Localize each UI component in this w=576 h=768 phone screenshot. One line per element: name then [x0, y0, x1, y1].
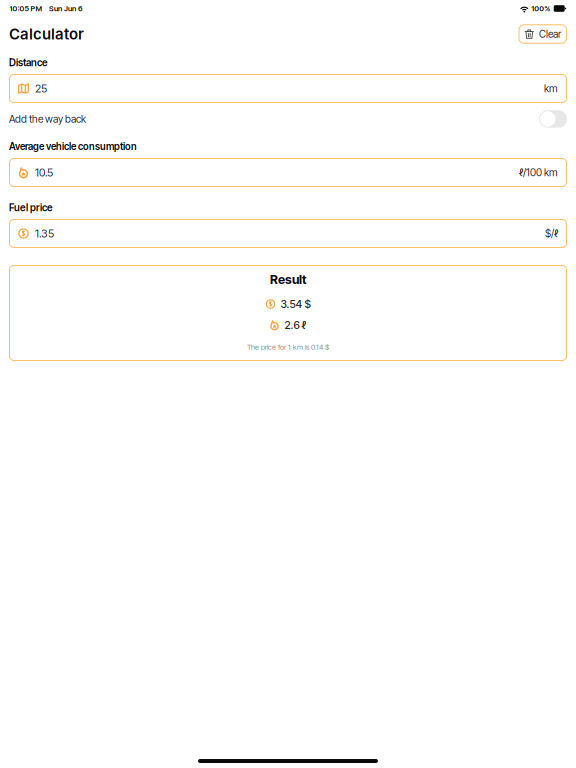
- staticText: 1.35: [35, 227, 54, 240]
- staticText: Fuel price: [9, 201, 53, 214]
- button[interactable]: 25: [9, 74, 567, 103]
- button[interactable]: 1.35: [9, 219, 567, 248]
- staticText: ℓ/100 km: [519, 166, 558, 179]
- staticText: Result: [270, 272, 306, 287]
- staticText: 10:05 PM: [9, 4, 42, 13]
- staticText: 10.5: [35, 166, 53, 179]
- button[interactable]: 10.5: [9, 158, 567, 187]
- staticText: Calculator: [9, 25, 84, 43]
- staticText: 100%: [531, 4, 550, 13]
- button[interactable]: Add the way back: [9, 110, 567, 128]
- staticText: Average vehicle consumption: [9, 141, 137, 152]
- staticText: Distance: [9, 56, 48, 69]
- staticText: $/ℓ: [545, 227, 558, 240]
- button[interactable]: Clear: [518, 24, 567, 44]
- staticText: Clear: [539, 28, 561, 40]
- staticText: Add the way back: [9, 113, 86, 125]
- staticText: 3.54 $: [280, 297, 310, 311]
- staticText: 2.6 ℓ: [284, 318, 306, 332]
- staticText: 25: [35, 82, 47, 95]
- staticText: km: [544, 82, 558, 95]
- staticText: Sun Jun 6: [49, 4, 83, 13]
- staticText: The price for 1 km is 0.14 $: [247, 343, 329, 351]
